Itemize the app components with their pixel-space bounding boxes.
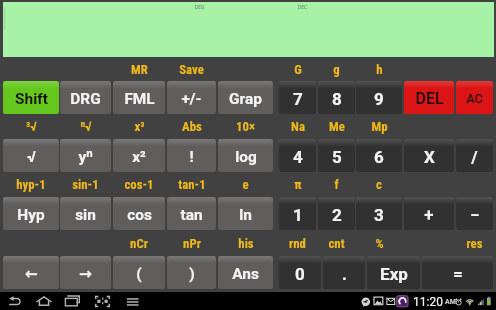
staticText: 3 — [374, 205, 384, 225]
staticText: nCr — [130, 236, 148, 251]
staticText: 8 — [332, 89, 342, 109]
staticText: hyp-1 — [16, 177, 46, 192]
staticText: x² — [132, 148, 146, 166]
button[interactable]: ! — [167, 139, 216, 172]
button[interactable]: Exp — [367, 256, 420, 289]
button[interactable]: FML — [113, 81, 165, 114]
staticText: FML — [124, 90, 155, 108]
button[interactable]: − — [456, 197, 493, 230]
staticText: Ans — [232, 265, 259, 283]
staticText: tan-1 — [178, 177, 206, 192]
button[interactable]: Shift — [3, 81, 59, 114]
staticText: 10× — [236, 119, 255, 134]
staticText: MR — [131, 62, 148, 77]
button[interactable]: → — [60, 256, 111, 289]
staticText: nPr — [183, 236, 201, 251]
staticText: 2 — [332, 205, 342, 225]
staticText: 4 — [293, 147, 303, 167]
staticText: ⁿ√ — [80, 119, 92, 134]
button[interactable]: Menu — [123, 292, 145, 310]
staticText: 5 — [332, 147, 342, 167]
staticText: g — [333, 62, 340, 77]
button[interactable]: log — [218, 139, 273, 172]
staticText: his — [238, 236, 254, 251]
staticText: sin — [75, 206, 96, 224]
button[interactable]: 5 — [318, 139, 355, 172]
staticText: ln — [239, 206, 252, 224]
staticText: log — [235, 148, 257, 166]
staticText: ³√ — [26, 119, 37, 134]
staticText: + — [424, 205, 434, 225]
staticText: % — [375, 236, 384, 251]
button[interactable]: Home — [33, 292, 55, 310]
staticText: 0 — [295, 264, 305, 284]
staticText: rnd — [289, 236, 306, 251]
button[interactable]: tan — [167, 197, 216, 230]
staticText: 1 — [293, 205, 303, 225]
staticText: Mp — [371, 119, 388, 134]
staticText: Na — [291, 119, 305, 134]
staticText: e — [242, 177, 249, 192]
button[interactable]: 2 — [318, 197, 355, 230]
staticText: √ — [27, 148, 36, 166]
button[interactable]: 4 — [279, 139, 316, 172]
staticText: ( — [136, 265, 142, 283]
button[interactable]: DEL — [404, 81, 454, 114]
button[interactable]: Screenshot — [93, 292, 115, 310]
button[interactable]: ( — [113, 256, 165, 289]
staticText: ← — [25, 265, 38, 283]
button[interactable]: sin — [60, 197, 111, 230]
button[interactable]: Grap — [218, 81, 273, 114]
button[interactable]: ← — [3, 256, 59, 289]
staticText: Me — [329, 119, 345, 134]
button[interactable]: ) — [167, 256, 216, 289]
staticText: Grap — [229, 90, 262, 108]
staticText: res — [466, 236, 483, 251]
button[interactable]: + — [404, 197, 454, 230]
button[interactable]: 3 — [356, 197, 402, 230]
button[interactable]: Back — [4, 292, 26, 310]
button[interactable]: DRG — [60, 81, 111, 114]
button[interactable]: 6 — [356, 139, 402, 172]
button[interactable]: 9 — [356, 81, 402, 114]
staticText: → — [79, 265, 92, 283]
staticText: ) — [189, 265, 195, 283]
button[interactable]: yⁿ — [60, 139, 111, 172]
staticText: cnt — [328, 236, 345, 251]
staticText: 7 — [293, 89, 303, 109]
button[interactable]: √ — [3, 139, 59, 172]
button[interactable]: +/- — [167, 81, 216, 114]
button[interactable]: X — [404, 139, 454, 172]
button[interactable]: / — [456, 139, 493, 172]
button[interactable]: ln — [218, 197, 273, 230]
button[interactable]: 1 — [279, 197, 316, 230]
staticText: / — [471, 147, 478, 167]
button[interactable]: 8 — [318, 81, 355, 114]
button[interactable]: AC — [456, 81, 493, 114]
button[interactable]: 0 — [279, 256, 321, 289]
staticText: AC — [466, 91, 483, 106]
staticText: ! — [189, 148, 194, 166]
staticText: f — [334, 177, 339, 192]
staticText: DEG — [195, 4, 205, 10]
staticText: yⁿ — [78, 148, 93, 166]
button[interactable]: 7 — [279, 81, 316, 114]
staticText: cos — [127, 206, 152, 224]
staticText: X — [424, 147, 435, 167]
button[interactable]: Ans — [218, 256, 273, 289]
staticText: DEL — [415, 89, 444, 108]
button[interactable]: . — [323, 256, 365, 289]
button[interactable]: cos — [113, 197, 165, 230]
staticText: π — [294, 177, 302, 192]
staticText: Abs — [182, 119, 202, 134]
staticText: h — [376, 62, 383, 77]
button[interactable]: = — [422, 256, 493, 289]
staticText: = — [453, 264, 463, 284]
staticText: 6 — [374, 147, 384, 167]
button[interactable]: Hyp — [3, 197, 59, 230]
staticText: DEC — [298, 4, 308, 10]
staticText: x³ — [134, 119, 145, 134]
staticText: . — [342, 264, 347, 284]
button[interactable]: x² — [113, 139, 165, 172]
button[interactable]: Recent apps — [63, 292, 85, 310]
